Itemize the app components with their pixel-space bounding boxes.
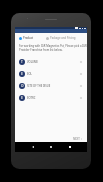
staticText: EOL xyxy=(27,72,33,76)
staticText: VOLUME xyxy=(27,60,38,64)
button[interactable]: E xyxy=(15,92,87,104)
staticText: SITE OF THE ISSUE xyxy=(27,84,51,88)
staticText: Package and Pricing xyxy=(50,36,76,40)
staticText: For working with IGR Magnetics Pvt, Plea… xyxy=(19,44,87,52)
button[interactable]: Package and Pricing xyxy=(46,36,76,40)
button[interactable]: Back xyxy=(32,146,34,148)
button[interactable]: E xyxy=(15,68,87,80)
staticText: EOTRC xyxy=(27,96,36,100)
button[interactable]: O xyxy=(15,80,87,92)
staticText: E xyxy=(21,72,23,76)
staticText: Product xyxy=(23,36,34,40)
button[interactable]: NEXT xyxy=(72,136,83,142)
staticText: O xyxy=(21,84,24,88)
button[interactable]: T xyxy=(15,56,87,68)
staticText: E xyxy=(21,96,23,100)
staticText: T xyxy=(21,60,23,64)
staticText: NEXT xyxy=(73,137,80,141)
button[interactable]: Product xyxy=(19,36,34,40)
